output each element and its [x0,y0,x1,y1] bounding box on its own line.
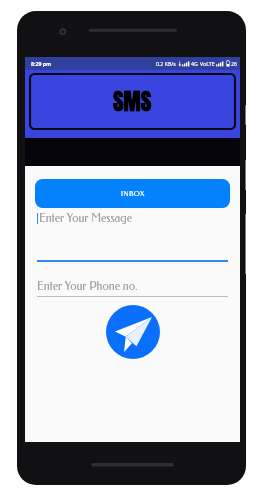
staticText: Enter Your Phone no. [37,279,138,293]
staticText: VoLTE [200,60,215,67]
staticText: SMS [113,84,152,119]
staticText: INBOX [121,190,145,198]
staticText: Enter Your Message [39,211,133,225]
staticText: 8:29 pm [31,60,52,67]
staticText: 26 [231,60,237,67]
staticText: 0.2 KB/s [156,60,176,67]
staticText: 4G [191,60,198,67]
button[interactable]: Send message [106,305,160,359]
button[interactable]: INBOX [35,179,230,208]
